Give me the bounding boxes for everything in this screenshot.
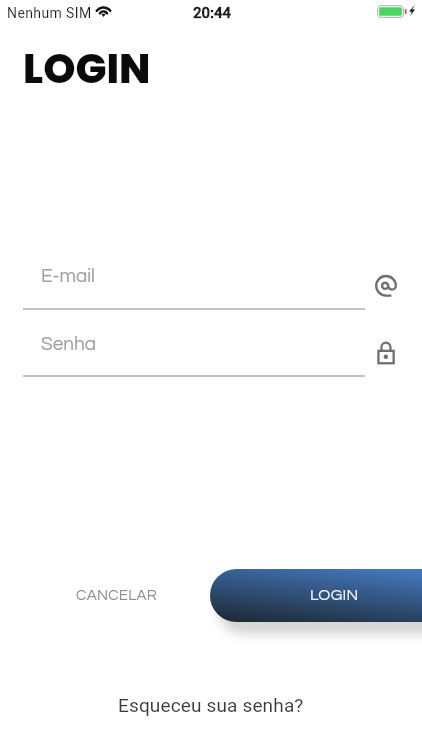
button[interactable]: CANCELAR: [64, 582, 170, 609]
button[interactable]: LOGIN: [210, 569, 422, 622]
other: Email: [375, 275, 399, 299]
staticText: CANCELAR: [76, 588, 158, 603]
other: Password: [375, 341, 399, 365]
staticText: 20:44: [193, 4, 232, 22]
button[interactable]: Esqueceu sua senha?: [116, 692, 306, 718]
staticText: Nenhum SIM: [7, 5, 92, 21]
staticText: Senha: [41, 334, 97, 354]
staticText: E-mail: [41, 266, 95, 286]
staticText: Esqueceu sua senha?: [118, 694, 304, 716]
staticText: LOGIN: [23, 40, 151, 97]
staticText: LOGIN: [310, 587, 359, 603]
